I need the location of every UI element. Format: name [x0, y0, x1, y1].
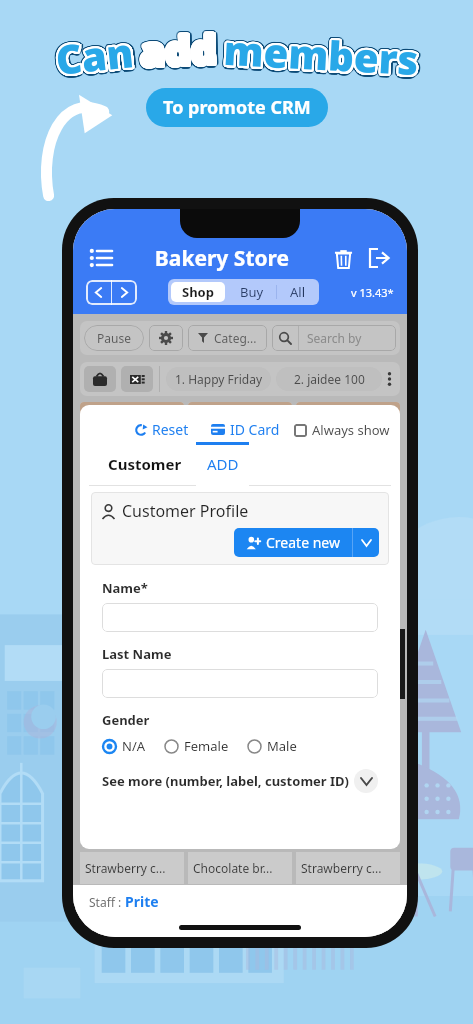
- staticText: members: [221, 21, 419, 85]
- staticText: add: [136, 23, 215, 79]
- button[interactable]: Bag: [84, 366, 116, 392]
- button[interactable]: Customer: [94, 442, 196, 486]
- staticText: Can: [51, 22, 134, 84]
- staticText: add: [140, 23, 219, 79]
- button[interactable]: Settings: [149, 325, 183, 351]
- staticText: Can: [54, 22, 137, 84]
- button[interactable]: See more (number, label, customer ID): [102, 769, 378, 793]
- staticText: Can: [51, 21, 134, 83]
- button[interactable]: 2. jaidee 100: [276, 367, 382, 391]
- staticText: Can: [52, 24, 135, 86]
- button[interactable]: Categ...: [188, 325, 267, 351]
- staticText: See more (number, label, customer ID): [102, 772, 354, 790]
- button[interactable]: Next: [112, 280, 137, 305]
- button[interactable]: Coupon: [121, 366, 153, 392]
- button[interactable]: Search by: [272, 325, 396, 351]
- button[interactable]: [80, 625, 184, 845]
- button[interactable]: Pause: [84, 325, 144, 351]
- staticText: add: [140, 19, 219, 75]
- button[interactable]: Reset: [129, 417, 195, 442]
- button[interactable]: [188, 402, 292, 621]
- button[interactable]: [102, 603, 378, 632]
- staticText: add: [138, 18, 217, 74]
- staticText: members: [224, 23, 422, 87]
- staticText: Can: [54, 21, 137, 83]
- staticText: Bakery Store: [116, 244, 328, 273]
- button[interactable]: Chocolate br...: [188, 852, 292, 884]
- staticText: Can: [56, 22, 139, 84]
- button[interactable]: [296, 402, 400, 621]
- staticText: add: [141, 23, 220, 79]
- staticText: members: [219, 22, 417, 86]
- button[interactable]: ID Card: [205, 417, 286, 442]
- button[interactable]: Always show: [294, 418, 390, 442]
- staticText: Can: [56, 23, 139, 85]
- staticText: add: [136, 22, 215, 78]
- staticText: members: [225, 23, 423, 87]
- staticText: Always show: [312, 421, 390, 439]
- staticText: add: [138, 20, 217, 76]
- staticText: Can: [53, 28, 137, 90]
- staticText: add: [141, 24, 220, 80]
- staticText: add: [136, 22, 215, 78]
- button[interactable]: ADD: [196, 442, 249, 486]
- staticText: Can: [53, 26, 136, 88]
- button[interactable]: Female: [164, 737, 229, 755]
- button[interactable]: More options: [382, 366, 396, 392]
- staticText: members: [220, 21, 418, 85]
- staticText: members: [222, 19, 419, 83]
- staticText: Customer: [108, 454, 182, 474]
- button[interactable]: N/A: [102, 737, 146, 755]
- button[interactable]: Create new: [234, 528, 352, 557]
- staticText: To promote CRM: [163, 95, 311, 120]
- staticText: Can: [51, 24, 134, 86]
- button[interactable]: [80, 402, 184, 621]
- staticText: Can: [57, 25, 140, 86]
- staticText: members: [221, 21, 419, 85]
- staticText: members: [222, 20, 419, 84]
- staticText: Can: [55, 26, 138, 88]
- staticText: Can: [55, 23, 138, 85]
- button[interactable]: [102, 669, 378, 698]
- button[interactable]: More create options: [353, 528, 379, 557]
- button[interactable]: Log out: [364, 243, 394, 273]
- button[interactable]: Buy: [228, 279, 276, 305]
- staticText: Can: [51, 23, 134, 85]
- button[interactable]: [188, 625, 292, 845]
- staticText: add: [138, 19, 217, 75]
- staticText: Can: [52, 23, 135, 85]
- button[interactable]: Menu: [86, 243, 116, 273]
- staticText: Can: [53, 27, 136, 89]
- staticText: Can: [55, 24, 138, 86]
- button[interactable]: 1. Happy Friday: [166, 367, 271, 391]
- staticText: Can: [52, 26, 135, 88]
- staticText: members: [224, 19, 421, 83]
- staticText: members: [221, 23, 419, 87]
- staticText: Strawberry c...: [301, 860, 382, 876]
- button[interactable]: Shop: [171, 282, 225, 302]
- staticText: add: [138, 20, 217, 76]
- staticText: Can: [55, 22, 138, 84]
- staticText: Strawberry c...: [85, 860, 166, 876]
- staticText: Can: [55, 26, 138, 88]
- staticText: members: [221, 21, 419, 85]
- button[interactable]: Male: [247, 737, 297, 755]
- button[interactable]: Strawberry c...: [80, 852, 184, 884]
- staticText: members: [223, 25, 421, 89]
- staticText: members: [219, 23, 417, 87]
- button[interactable]: Delete: [328, 243, 358, 273]
- button[interactable]: Previous: [86, 280, 111, 305]
- staticText: Can: [52, 23, 135, 85]
- button[interactable]: All: [277, 279, 319, 305]
- staticText: add: [139, 24, 218, 80]
- button[interactable]: Strawberry c...: [296, 852, 400, 884]
- button[interactable]: To promote CRM: [146, 88, 328, 127]
- staticText: add: [136, 22, 215, 78]
- staticText: members: [224, 22, 422, 86]
- staticText: add: [141, 22, 220, 78]
- staticText: members: [220, 21, 418, 85]
- staticText: Can: [55, 23, 138, 85]
- staticText: Can: [57, 23, 140, 84]
- staticText: Can: [52, 26, 135, 88]
- button[interactable]: [296, 625, 400, 845]
